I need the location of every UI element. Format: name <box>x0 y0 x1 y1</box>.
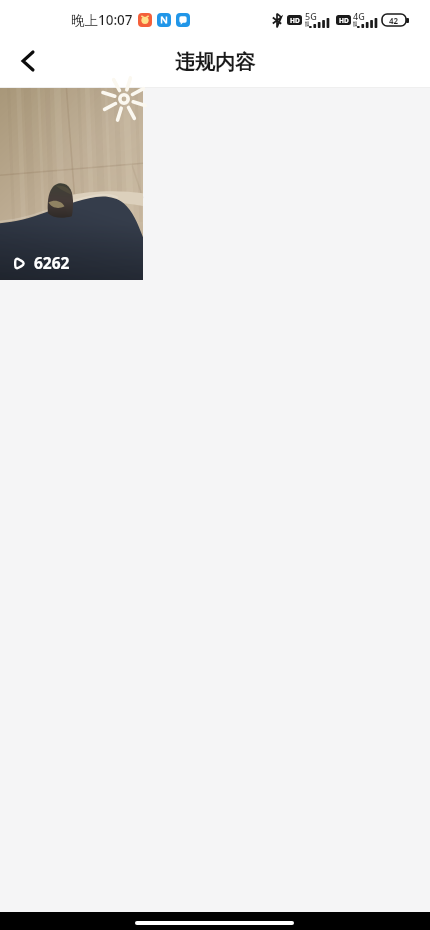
staticText: HD <box>339 16 349 25</box>
staticText: HD <box>290 16 300 25</box>
staticText: 6262 <box>34 252 70 273</box>
staticText: 42 <box>389 15 399 26</box>
button[interactable]: 违规视频 6262 <box>0 88 143 280</box>
staticText: 晚上10:07 <box>71 11 133 29</box>
staticText: 5G <box>305 10 317 22</box>
staticText: 违规内容 <box>175 50 255 75</box>
staticText: 4G <box>353 10 365 22</box>
button[interactable]: Home <box>135 921 294 925</box>
button[interactable]: Back <box>4 42 48 86</box>
